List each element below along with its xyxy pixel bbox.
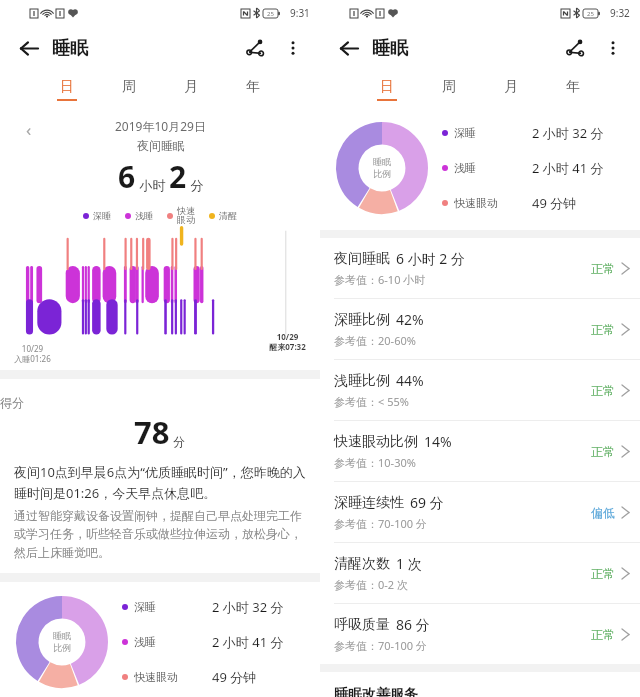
staticText: 正常 (591, 566, 615, 581)
button[interactable]: Share (558, 31, 592, 65)
button[interactable]: 年 (222, 70, 284, 108)
staticText: 清醒次数 (334, 555, 390, 573)
staticText: 49 分钟 (532, 194, 577, 212)
staticText: 2 小时 41 分 (212, 633, 284, 651)
staticText: 6 小时 2 分 (396, 249, 465, 268)
staticText: 月 (184, 78, 198, 96)
staticText: 日 (380, 78, 394, 96)
button[interactable]: 呼吸质量 (320, 604, 640, 664)
staticText: ‹ (26, 118, 32, 141)
staticText: 浅睡 (454, 161, 532, 175)
staticText: 睡眠 (372, 37, 408, 60)
staticText: 快速眼动 (454, 196, 532, 210)
staticText: 年 (566, 78, 580, 96)
staticText: 参考值：10-30% (334, 455, 416, 470)
staticText: 86 分 (396, 615, 430, 634)
staticText: 浅睡 (134, 635, 212, 649)
staticText: 6 (118, 156, 136, 197)
staticText: 睡眠改善服务 (334, 686, 418, 697)
staticText: 69 分 (410, 493, 444, 512)
button[interactable]: 年 (542, 70, 604, 108)
staticText: 49 分钟 (212, 668, 257, 686)
staticText: 清醒 (219, 210, 237, 221)
staticText: 42% (396, 310, 424, 329)
staticText: 10/29 醒来07:32 (269, 331, 306, 352)
staticText: 2 (169, 156, 187, 197)
staticText: 10/29 入睡01:26 (14, 343, 51, 364)
staticText: 25 (267, 10, 274, 18)
staticText: 深睡连续性 (334, 494, 404, 512)
button[interactable]: Back (12, 31, 46, 65)
staticText: 睡眠 比例 (53, 630, 71, 654)
staticText: 参考值：0-2 次 (334, 577, 408, 592)
staticText: 快速眼动 (134, 670, 212, 684)
staticText: 正常 (591, 261, 615, 276)
staticText: 夜间睡眠 (334, 250, 390, 268)
staticText: 深睡 (134, 600, 212, 614)
staticText: 2019年10月29日 (115, 118, 206, 134)
staticText: 周 (442, 78, 456, 96)
staticText: 睡眠 比例 (373, 156, 391, 180)
staticText: 快速眼动比例 (334, 433, 418, 451)
staticText: 参考值：< 55% (334, 394, 409, 409)
button[interactable]: 日 (36, 70, 98, 108)
staticText: 浅睡比例 (334, 372, 390, 390)
staticText: 参考值：70-100 分 (334, 516, 427, 531)
staticText: 小时 (136, 176, 169, 194)
staticText: 偏低 (591, 505, 615, 520)
staticText: 1 次 (396, 554, 422, 573)
staticText: 正常 (591, 627, 615, 642)
button[interactable]: 周 (98, 70, 160, 108)
button[interactable]: More options (276, 31, 310, 65)
staticText: 通过智能穿戴设备设置闹钟，提醒自己早点处理完工作或学习任务，听些轻音乐或做些拉伸… (14, 508, 306, 561)
staticText: 14% (424, 432, 452, 451)
button[interactable]: 周 (418, 70, 480, 108)
staticText: 2 小时 41 分 (532, 159, 604, 177)
staticText: 分 (170, 433, 186, 449)
button[interactable]: Back (332, 31, 366, 65)
staticText: 2 小时 32 分 (532, 124, 604, 142)
button[interactable]: 深睡比例 (320, 299, 640, 359)
staticText: 睡眠 (52, 37, 88, 60)
staticText: 深睡比例 (334, 311, 390, 329)
staticText: 得分 (0, 395, 320, 410)
staticText: 周 (122, 78, 136, 96)
button[interactable]: Share (238, 31, 272, 65)
staticText: 正常 (591, 383, 615, 398)
staticText: 夜间10点到早晨6点为“优质睡眠时间”，您昨晚的入睡时间是01:26，今天早点休… (14, 463, 306, 502)
staticText: 日 (60, 78, 74, 96)
button[interactable]: 月 (480, 70, 542, 108)
button[interactable]: 日 (356, 70, 418, 108)
staticText: 呼吸质量 (334, 616, 390, 634)
button[interactable]: 浅睡比例 (320, 360, 640, 420)
staticText: 正常 (591, 444, 615, 459)
staticText: 夜间睡眠 (137, 138, 185, 153)
staticText: 9:31 (290, 6, 310, 20)
staticText: 参考值：6-10 小时 (334, 272, 426, 287)
staticText: 正常 (591, 322, 615, 337)
staticText: 25 (587, 10, 594, 18)
button[interactable]: 夜间睡眠 (320, 238, 640, 298)
staticText: 快速 眼动 (177, 205, 195, 226)
staticText: 年 (246, 78, 260, 96)
staticText: 参考值：20-60% (334, 333, 416, 348)
staticText: 44% (396, 371, 424, 390)
staticText: 深睡 (93, 210, 111, 221)
button[interactable]: More options (596, 31, 630, 65)
staticText: 深睡 (454, 126, 532, 140)
staticText: 78 (134, 411, 170, 453)
staticText: 月 (504, 78, 518, 96)
staticText: 9:32 (610, 6, 630, 20)
staticText: 参考值：70-100 分 (334, 638, 427, 653)
staticText: 分 (187, 176, 204, 194)
button[interactable]: 清醒次数 (320, 543, 640, 603)
button[interactable]: 深睡连续性 (320, 482, 640, 542)
staticText: 浅睡 (135, 210, 153, 221)
staticText: 2 小时 32 分 (212, 598, 284, 616)
button[interactable]: 快速眼动比例 (320, 421, 640, 481)
button[interactable]: 月 (160, 70, 222, 108)
